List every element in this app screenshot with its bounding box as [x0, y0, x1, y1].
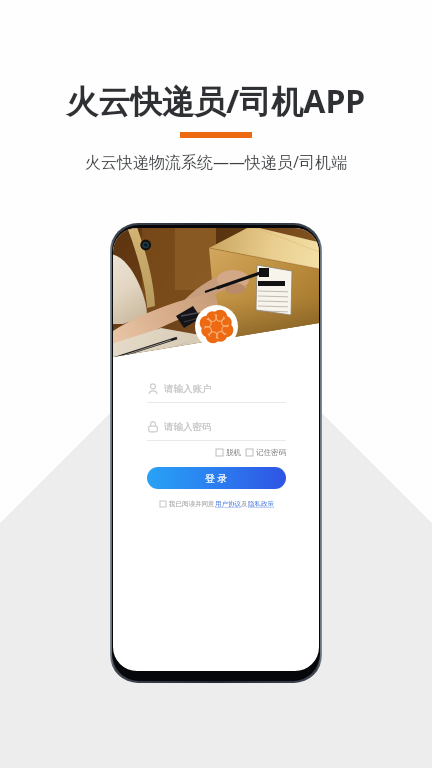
staticText: 登 录: [205, 471, 228, 485]
staticText: 请输入密码: [164, 421, 212, 433]
staticText: 火云快递员/司机APP: [66, 79, 366, 123]
staticText: 用户协议: [215, 500, 241, 508]
button[interactable]: 请输入账户: [147, 375, 286, 402]
button[interactable]: 记住密码: [246, 448, 286, 457]
staticText: 请输入账户: [164, 383, 212, 395]
staticText: 火云快递物流系统——快递员/司机端: [85, 151, 347, 173]
button[interactable]: 我已阅读并同意: [147, 500, 286, 508]
staticText: 脱机: [226, 448, 241, 457]
button[interactable]: 登 录: [147, 467, 286, 489]
staticText: 隐私政策: [248, 500, 274, 508]
staticText: 我已阅读并同意: [169, 500, 215, 508]
other: App logo: [195, 305, 238, 348]
button[interactable]: 脱机: [216, 448, 241, 457]
staticText: 及: [241, 500, 248, 508]
staticText: 记住密码: [256, 448, 286, 457]
button[interactable]: 请输入密码: [147, 413, 286, 440]
